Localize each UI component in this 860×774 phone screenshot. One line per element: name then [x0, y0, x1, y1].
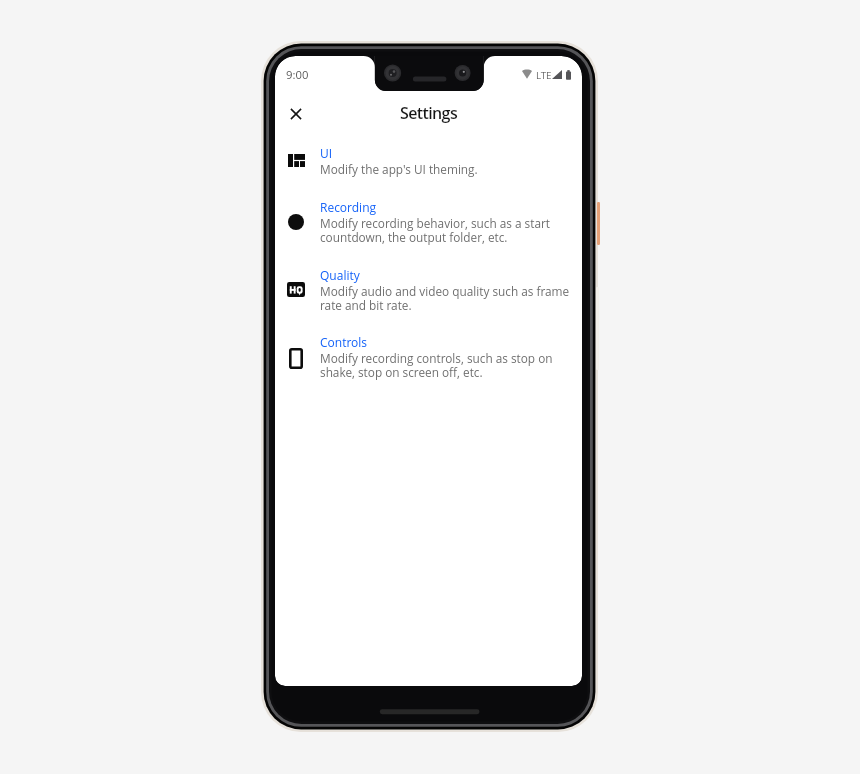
- staticText: Modify the app's UI theming.: [320, 161, 478, 177]
- button[interactable]: Recording: [275, 181, 582, 249]
- button[interactable]: Controls: [275, 316, 582, 384]
- staticText: Modify recording controls, such as stop …: [320, 350, 579, 381]
- staticText: Modify audio and video quality such as f…: [320, 283, 579, 314]
- staticText: 9:00: [286, 67, 309, 82]
- staticText: UI: [320, 145, 333, 161]
- button[interactable]: UI: [275, 127, 582, 181]
- staticText: Settings: [400, 102, 458, 124]
- button[interactable]: Quality: [275, 249, 582, 317]
- staticText: LTE: [536, 69, 552, 82]
- staticText: Controls: [320, 334, 368, 350]
- staticText: Modify recording behavior, such as a sta…: [320, 215, 579, 246]
- staticText: Quality: [320, 267, 360, 283]
- button[interactable]: Close: [280, 97, 312, 129]
- staticText: Recording: [320, 199, 377, 215]
